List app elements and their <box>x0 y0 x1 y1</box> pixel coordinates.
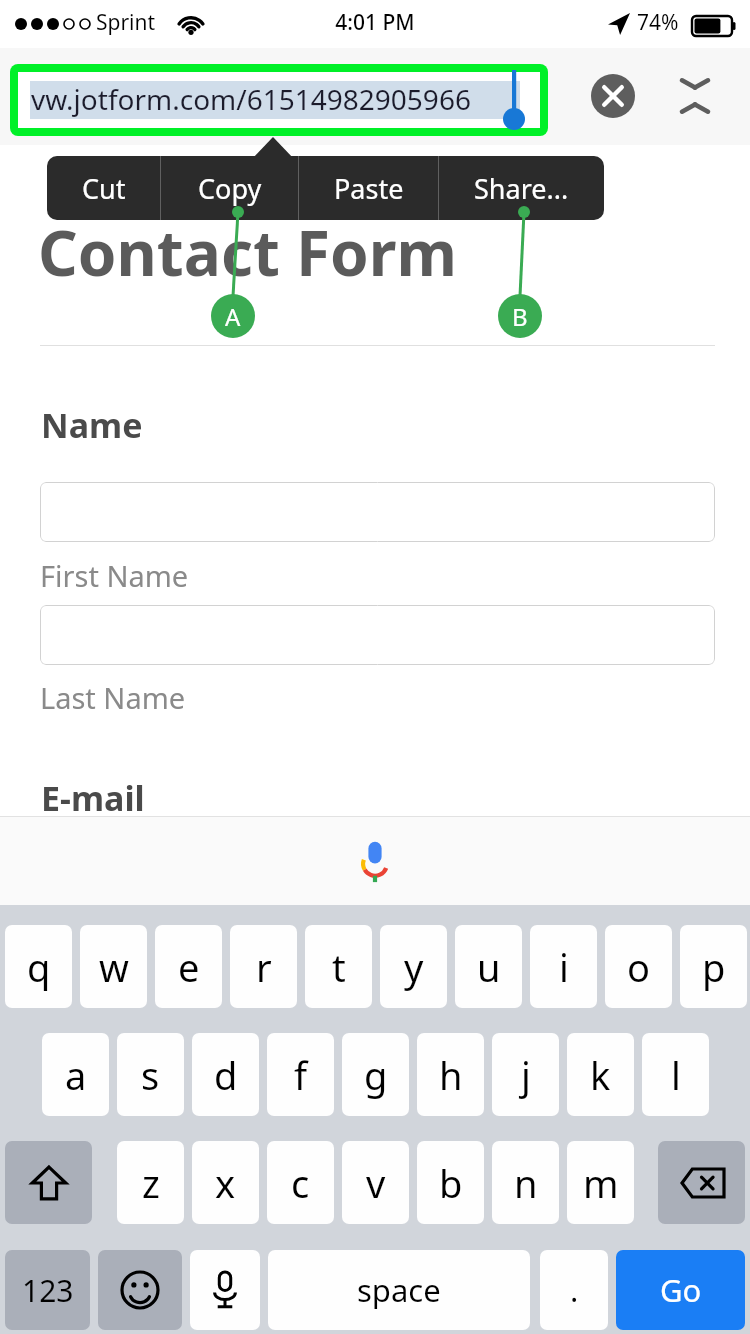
staticText: y <box>404 941 424 993</box>
staticText: j <box>521 1049 531 1101</box>
staticText: g <box>364 1049 388 1101</box>
staticText: e <box>178 941 200 993</box>
staticText: q <box>27 941 51 993</box>
staticText: a <box>65 1049 87 1101</box>
staticText: s <box>141 1049 160 1101</box>
staticText: b <box>439 1157 463 1209</box>
staticText: Name <box>41 402 143 448</box>
staticText: m <box>583 1157 619 1209</box>
button[interactable]: Backspace <box>658 1141 745 1224</box>
button[interactable]: y <box>380 925 447 1008</box>
staticText: f <box>294 1049 308 1101</box>
button[interactable]: space <box>268 1250 530 1330</box>
button[interactable]: s <box>117 1033 184 1116</box>
button[interactable]: e <box>155 925 222 1008</box>
staticText: Copy <box>198 170 262 207</box>
staticText: o <box>627 941 650 993</box>
staticText: Go <box>660 1269 702 1311</box>
button[interactable]: i <box>530 925 597 1008</box>
button[interactable]: o <box>605 925 672 1008</box>
button[interactable]: Shift <box>5 1141 92 1224</box>
staticText: z <box>142 1157 160 1209</box>
button[interactable]: j <box>492 1033 559 1116</box>
button[interactable]: p <box>680 925 747 1008</box>
staticText: i <box>559 941 569 993</box>
staticText: d <box>214 1049 238 1101</box>
button[interactable]: g <box>342 1033 409 1116</box>
button[interactable]: n <box>492 1141 559 1224</box>
button[interactable]: Paste <box>299 156 438 220</box>
button[interactable]: w <box>80 925 147 1008</box>
staticText: Last Name <box>40 678 186 717</box>
staticText: Paste <box>334 170 404 207</box>
staticText: h <box>439 1049 463 1101</box>
button[interactable]: Clear text <box>591 74 635 118</box>
button[interactable]: c <box>267 1141 334 1224</box>
button[interactable]: k <box>567 1033 634 1116</box>
staticText: w <box>99 941 129 993</box>
button[interactable]: 123 <box>5 1250 90 1330</box>
staticText: B <box>512 300 528 333</box>
button[interactable]: Voice input <box>353 837 397 885</box>
button[interactable] <box>40 605 715 665</box>
staticText: Share... <box>474 170 569 207</box>
staticText: A <box>225 300 241 333</box>
staticText: 123 <box>22 1270 74 1311</box>
button[interactable]: a <box>42 1033 109 1116</box>
button[interactable]: v <box>342 1141 409 1224</box>
button[interactable]: u <box>455 925 522 1008</box>
button[interactable]: Emoji <box>98 1250 182 1330</box>
button[interactable]: h <box>417 1033 484 1116</box>
button[interactable]: m <box>567 1141 634 1224</box>
staticText: l <box>671 1049 681 1101</box>
staticText: u <box>477 941 501 993</box>
button[interactable]: t <box>305 925 372 1008</box>
button[interactable]: l <box>642 1033 709 1116</box>
staticText: . <box>570 1269 579 1311</box>
button[interactable]: Share... <box>439 156 604 220</box>
button[interactable] <box>40 482 715 542</box>
staticText: Sprint <box>96 8 156 37</box>
staticText: n <box>514 1157 538 1209</box>
staticText: c <box>291 1157 310 1209</box>
button[interactable]: z <box>117 1141 184 1224</box>
button[interactable]: x <box>192 1141 259 1224</box>
button[interactable]: r <box>230 925 297 1008</box>
staticText: x <box>215 1157 236 1209</box>
staticText: vw.jotform.com/61514982905966 <box>31 80 471 118</box>
button[interactable]: Voice typing <box>190 1250 260 1330</box>
staticText: t <box>332 941 346 993</box>
staticText: v <box>366 1157 386 1209</box>
staticText: Cut <box>82 170 126 207</box>
staticText: r <box>256 941 272 993</box>
button[interactable]: q <box>5 925 72 1008</box>
button[interactable]: d <box>192 1033 259 1116</box>
button[interactable]: vw.jotform.com/61514982905966 <box>18 72 540 128</box>
button[interactable]: Go <box>616 1250 745 1330</box>
button[interactable]: Cut <box>47 156 160 220</box>
staticText: p <box>702 941 726 993</box>
button[interactable]: . <box>540 1250 608 1330</box>
button[interactable]: Copy <box>161 156 298 220</box>
staticText: 74% <box>637 8 679 37</box>
button[interactable]: f <box>267 1033 334 1116</box>
staticText: First Name <box>40 556 189 595</box>
button[interactable]: Previous and next field <box>668 68 722 124</box>
staticText: k <box>590 1049 611 1101</box>
staticText: E-mail <box>41 775 145 821</box>
staticText: 4:01 PM <box>0 8 750 37</box>
staticText: space <box>357 1269 441 1311</box>
staticText: Contact Form <box>38 210 457 294</box>
button[interactable]: b <box>417 1141 484 1224</box>
